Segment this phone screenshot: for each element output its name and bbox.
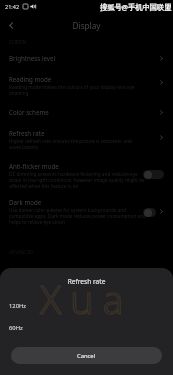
staticText: Cancel xyxy=(77,352,96,360)
button[interactable]: Dark mode xyxy=(0,194,173,231)
staticText: DC dimming prevents hardware flickering … xyxy=(9,171,147,189)
staticText: Anti-flicker mode xyxy=(9,162,59,170)
staticText: Xua xyxy=(40,272,133,325)
staticText: Display xyxy=(0,20,173,31)
button[interactable]: Color scheme xyxy=(0,101,173,122)
staticText: Reading mode xyxy=(9,75,52,83)
staticText: Brightness level xyxy=(9,54,56,62)
button[interactable]: 60Hz xyxy=(0,317,173,339)
staticText: 60Hz xyxy=(9,324,23,332)
button[interactable]: 120Hz xyxy=(0,295,173,317)
button[interactable]: Toggle xyxy=(143,208,156,217)
button[interactable]: Brightness level xyxy=(0,48,173,69)
staticText: SCREEN xyxy=(9,39,27,45)
staticText: ADVANCED xyxy=(9,249,34,255)
button[interactable]: Reading mode xyxy=(0,69,173,97)
button[interactable]: Back xyxy=(2,16,20,34)
staticText: 120Hz xyxy=(9,302,26,310)
button[interactable]: Refresh rate xyxy=(0,124,173,152)
staticText: 搜狐号@手机中国联盟 xyxy=(100,2,172,12)
button[interactable]: Anti-flicker mode xyxy=(0,158,173,192)
staticText: 21:42 xyxy=(5,3,20,10)
staticText: Dark mode xyxy=(9,198,42,206)
staticText: Use darker color palette for system back… xyxy=(9,207,147,225)
button[interactable]: Toggle xyxy=(143,170,164,179)
staticText: Refresh rate xyxy=(9,129,45,137)
staticText: Higher refresh rate ensures the picture … xyxy=(9,138,145,150)
staticText: Reading mode makes the colours of your d… xyxy=(9,84,145,96)
button[interactable]: Cancel xyxy=(11,347,162,364)
staticText: Color scheme xyxy=(9,108,49,116)
staticText: Refresh rate xyxy=(0,277,173,286)
